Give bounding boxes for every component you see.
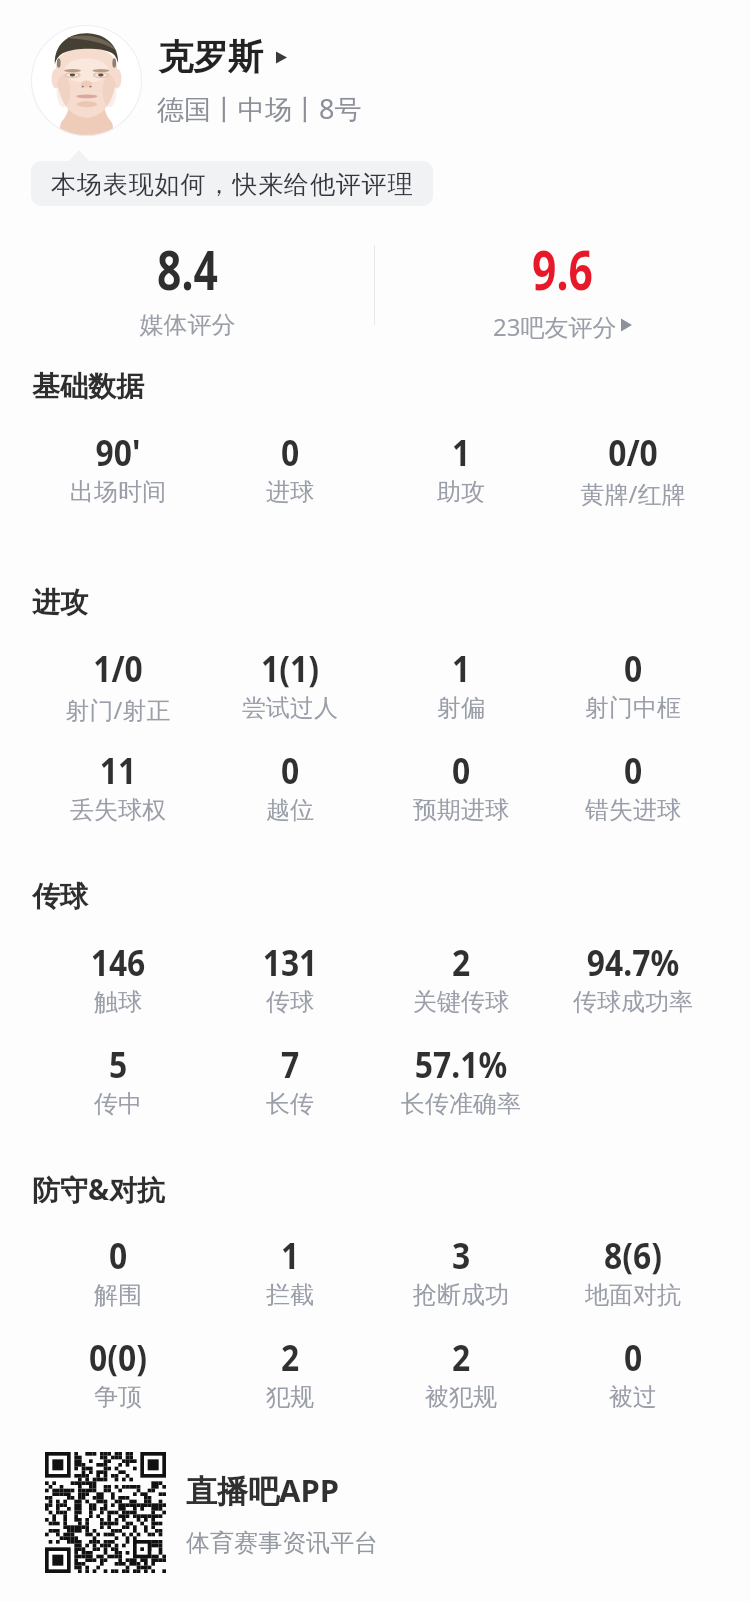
staticText: 传球 xyxy=(204,987,376,1017)
staticText: 0 xyxy=(40,1232,196,1280)
button[interactable]: 克罗斯 xyxy=(158,35,287,79)
staticText: 8.4 xyxy=(39,232,336,306)
staticText: 预期进球 xyxy=(375,795,547,825)
staticText: 9.6 xyxy=(414,232,711,306)
staticText: 关键传球 xyxy=(375,987,547,1017)
button[interactable]: 8.4 xyxy=(0,226,375,344)
staticText: 2 xyxy=(212,1334,368,1382)
staticText: 尝试过人 xyxy=(204,693,376,723)
staticText: 0 xyxy=(212,747,368,795)
staticText: 传球 xyxy=(32,879,88,914)
staticText: 23吧友评分 xyxy=(493,310,617,343)
staticText: 本场表现如何，快来给他评评理 xyxy=(51,169,414,200)
staticText: 1 xyxy=(383,429,539,477)
button[interactable]: 本场表现如何，快来给他评评理 xyxy=(31,161,433,206)
staticText: 0 xyxy=(383,747,539,795)
staticText: 57.1% xyxy=(383,1041,539,1089)
staticText: 0 xyxy=(555,645,711,693)
staticText: 犯规 xyxy=(204,1382,376,1412)
staticText: 2 xyxy=(383,1334,539,1382)
staticText: 被过 xyxy=(547,1382,719,1412)
staticText: 长传 xyxy=(204,1089,376,1119)
staticText: 德国丨中场丨8号 xyxy=(157,90,362,127)
staticText: 错失进球 xyxy=(547,795,719,825)
staticText: 传球成功率 xyxy=(547,987,719,1017)
staticText: 90' xyxy=(40,429,196,477)
staticText: 94.7% xyxy=(555,939,711,987)
staticText: 丢失球权 xyxy=(32,795,204,825)
staticText: 传中 xyxy=(32,1089,204,1119)
staticText: 进球 xyxy=(204,477,376,507)
staticText: 拦截 xyxy=(204,1280,376,1310)
staticText: 11 xyxy=(40,747,196,795)
staticText: 基础数据 xyxy=(32,369,144,404)
staticText: 0 xyxy=(212,429,368,477)
staticText: 长传准确率 xyxy=(375,1089,547,1119)
staticText: 直播吧APP xyxy=(186,1469,339,1511)
staticText: 8(6) xyxy=(555,1232,711,1280)
staticText: 争顶 xyxy=(32,1382,204,1412)
staticText: 媒体评分 xyxy=(0,310,375,340)
staticText: 131 xyxy=(212,939,368,987)
staticText: 0(0) xyxy=(40,1334,196,1382)
staticText: 进攻 xyxy=(32,585,88,620)
staticText: 7 xyxy=(212,1041,368,1089)
staticText: 被犯规 xyxy=(375,1382,547,1412)
staticText: 5 xyxy=(40,1041,196,1089)
staticText: 2 xyxy=(383,939,539,987)
staticText: 出场时间 xyxy=(32,477,204,507)
staticText: 防守&对抗 xyxy=(32,1170,166,1208)
staticText: 克罗斯 xyxy=(158,35,263,79)
staticText: 0 xyxy=(555,747,711,795)
staticText: 越位 xyxy=(204,795,376,825)
staticText: 1(1) xyxy=(212,645,368,693)
staticText: 146 xyxy=(40,939,196,987)
staticText: 1 xyxy=(212,1232,368,1280)
button[interactable]: QR code xyxy=(45,1452,166,1573)
staticText: 0/0 xyxy=(555,429,711,477)
button[interactable]: Player avatar xyxy=(31,25,142,136)
staticText: 触球 xyxy=(32,987,204,1017)
staticText: 射偏 xyxy=(375,693,547,723)
button[interactable]: 9.6 xyxy=(375,226,750,344)
staticText: 助攻 xyxy=(375,477,547,507)
staticText: 体育赛事资讯平台 xyxy=(186,1528,378,1558)
staticText: 黄牌/红牌 xyxy=(547,477,719,510)
staticText: 射门中框 xyxy=(547,693,719,723)
staticText: 3 xyxy=(383,1232,539,1280)
staticText: 地面对抗 xyxy=(547,1280,719,1310)
staticText: 0 xyxy=(555,1334,711,1382)
staticText: 1/0 xyxy=(40,645,196,693)
staticText: 射门/射正 xyxy=(32,693,204,726)
staticText: 解围 xyxy=(32,1280,204,1310)
staticText: 1 xyxy=(383,645,539,693)
staticText: 抢断成功 xyxy=(375,1280,547,1310)
